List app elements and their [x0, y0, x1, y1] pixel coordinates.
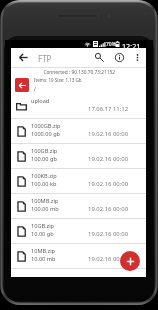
staticText: 100MB.zip	[31, 197, 59, 205]
button[interactable]: upload	[11, 94, 146, 118]
staticText: 19.02.16 00:00	[11, 155, 128, 163]
staticText: 10MB.zip	[31, 247, 56, 255]
button[interactable]: Back	[12, 48, 34, 67]
staticText: 19.02.16 00:00	[11, 205, 128, 213]
staticText: Items: 19 Size: 1.13 Gb	[34, 77, 82, 83]
staticText: 70%	[106, 41, 116, 48]
staticText: 12:21	[122, 41, 141, 49]
staticText: /	[34, 86, 36, 93]
staticText: 19.02.16 00:00	[11, 230, 128, 238]
button[interactable]: Up one level	[15, 78, 29, 92]
staticText: 19.02.16 00:00	[11, 130, 128, 138]
staticText: 100.00 kb	[31, 180, 57, 188]
staticText: Connected : 90.130.70.73:21152	[34, 69, 115, 76]
staticText: 100.00 gb	[31, 155, 57, 163]
staticText: 1000GB.zip	[31, 122, 61, 130]
staticText: 10.00 gb	[31, 230, 54, 238]
button[interactable]: 100GB.zip	[11, 144, 146, 168]
staticText: 10GB.zip	[31, 222, 55, 230]
staticText: 17.06.17 11:12	[11, 105, 128, 113]
button[interactable]: 100MB.zip	[11, 194, 146, 218]
button[interactable]: Add	[120, 251, 140, 271]
staticText: 100.00 mb	[31, 205, 59, 213]
staticText: 10.00 mb	[31, 255, 56, 263]
staticText: 19.02.16 00:00	[11, 180, 128, 188]
staticText: FTP	[38, 53, 52, 64]
staticText: upload	[31, 97, 50, 105]
button[interactable]: Search	[91, 48, 108, 67]
staticText: 100GB.zip	[31, 147, 58, 155]
button[interactable]: 100KB.zip	[11, 169, 146, 193]
staticText: 100KB.zip	[31, 172, 57, 180]
button[interactable]: 1000GB.zip	[11, 119, 146, 143]
button[interactable]: More options	[130, 48, 144, 67]
staticText: 19.02.16 00:00	[11, 255, 128, 263]
staticText: 1000.00 gb	[31, 130, 61, 138]
button[interactable]: Info	[111, 48, 128, 66]
button[interactable]: 10GB.zip	[11, 219, 146, 243]
button[interactable]: 10MB.zip	[11, 244, 146, 268]
